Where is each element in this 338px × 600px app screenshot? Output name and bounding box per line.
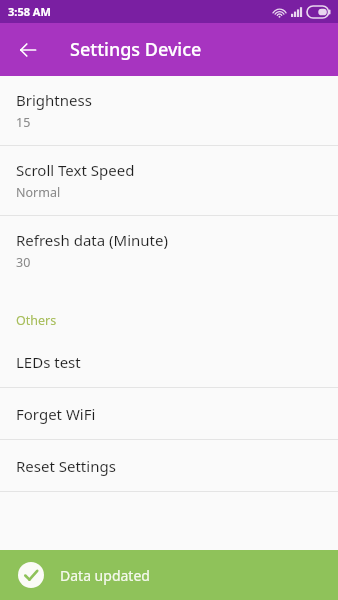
button[interactable]: Forget WiFi — [0, 388, 338, 439]
button[interactable]: Refresh data (Minute) — [0, 216, 338, 285]
staticText: Brightness — [16, 90, 92, 110]
staticText: Reset Settings — [16, 456, 116, 476]
staticText: Others — [16, 312, 57, 329]
staticText: Normal — [16, 184, 61, 201]
staticText: Forget WiFi — [16, 404, 96, 424]
staticText: Settings Device — [70, 37, 202, 62]
staticText: Scroll Text Speed — [16, 160, 135, 180]
staticText: Refresh data (Minute) — [16, 230, 168, 250]
button[interactable]: Scroll Text Speed — [0, 146, 338, 215]
staticText: LEDs test — [16, 352, 81, 372]
button[interactable]: Back — [6, 28, 50, 72]
staticText: 30 — [16, 254, 31, 271]
staticText: 15 — [16, 114, 31, 131]
staticText: 3:58 AM — [8, 4, 51, 19]
button[interactable]: Reset Settings — [0, 440, 338, 491]
button[interactable]: LEDs test — [0, 336, 338, 387]
staticText: Data updated — [60, 566, 150, 585]
button[interactable]: Brightness — [0, 76, 338, 145]
button[interactable]: Data updated — [0, 550, 338, 600]
